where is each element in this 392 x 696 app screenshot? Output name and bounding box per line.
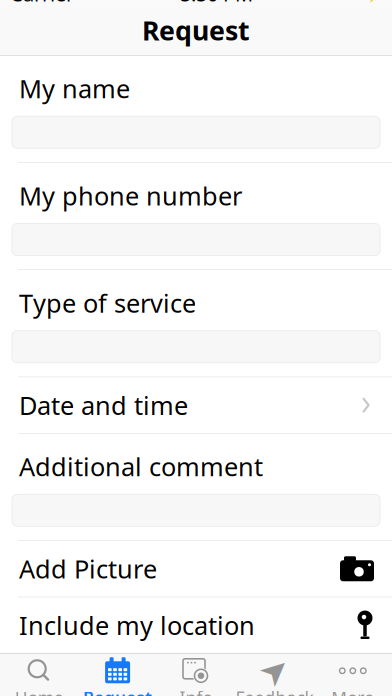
staticText: Carrier xyxy=(10,0,74,7)
button[interactable]: ➤ xyxy=(235,653,314,696)
staticText: More xyxy=(331,686,374,696)
staticText: Date and time xyxy=(19,388,188,422)
staticText: Feedback xyxy=(235,686,313,696)
staticText: Include my location xyxy=(19,608,255,642)
staticText: Add Picture xyxy=(19,552,157,586)
staticText: Request xyxy=(142,12,250,48)
staticText: 5:50 PM xyxy=(180,0,253,7)
button[interactable]: Home xyxy=(0,653,78,696)
staticText: Info xyxy=(179,686,212,696)
staticText: ➤ xyxy=(260,651,289,690)
staticText: Additional comment xyxy=(19,450,263,483)
staticText: My phone number xyxy=(19,179,242,212)
button[interactable]: More xyxy=(314,653,392,696)
staticText: Type of service xyxy=(19,286,196,320)
button[interactable]: Request xyxy=(78,653,157,696)
staticText: Request xyxy=(83,686,152,696)
button[interactable]: Date and time xyxy=(0,377,392,433)
staticText: Home xyxy=(15,686,64,696)
staticText: My name xyxy=(19,72,130,105)
button[interactable]: Add Picture xyxy=(0,541,392,597)
button[interactable]: Info xyxy=(157,653,235,696)
button[interactable]: Include my location xyxy=(0,597,392,653)
staticText: ⚡ xyxy=(366,0,384,2)
